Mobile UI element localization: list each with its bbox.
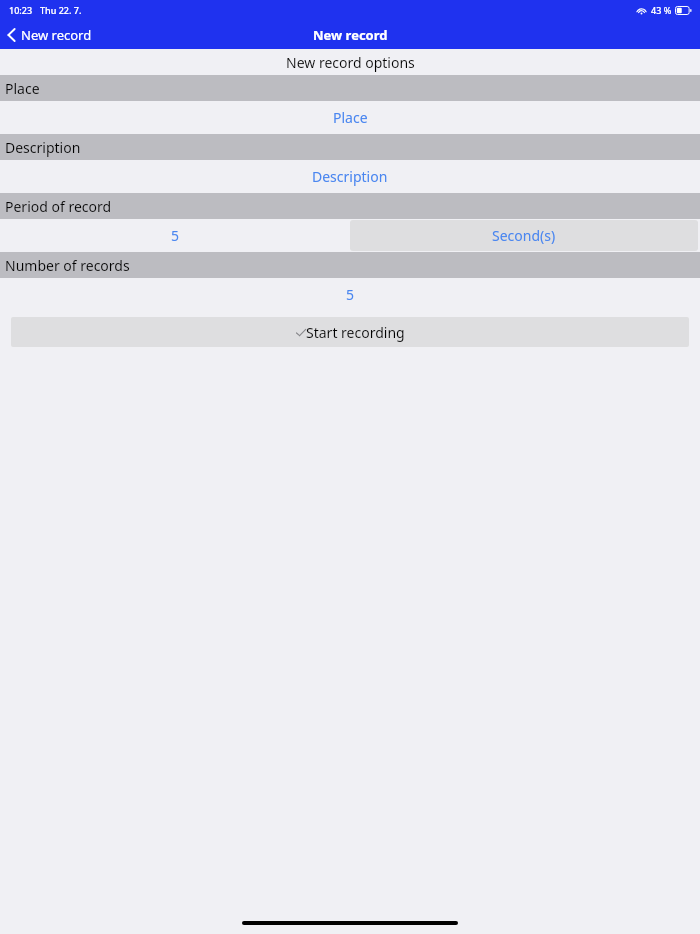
- button[interactable]: Start recording: [11, 317, 689, 347]
- staticText: Second(s): [492, 226, 556, 245]
- staticText: Place: [333, 108, 368, 127]
- staticText: New record options: [286, 53, 415, 72]
- staticText: New record: [21, 26, 92, 44]
- staticText: Period of record: [5, 197, 112, 216]
- staticText: 5: [346, 285, 355, 304]
- staticText: Description: [5, 138, 81, 157]
- staticText: Description: [312, 167, 388, 186]
- button[interactable]: 5: [0, 278, 700, 311]
- staticText: Start recording: [306, 323, 405, 342]
- staticText: New record: [313, 26, 388, 44]
- staticText: 5: [171, 226, 180, 245]
- button[interactable]: 5: [0, 219, 350, 252]
- staticText: 43 %: [651, 4, 672, 16]
- button[interactable]: Back to New record: [0, 22, 100, 48]
- button[interactable]: Place: [0, 101, 700, 134]
- button[interactable]: Description: [0, 160, 700, 193]
- staticText: 10:23: [9, 4, 33, 16]
- button[interactable]: Second(s): [350, 220, 698, 251]
- staticText: Thu 22. 7.: [40, 4, 82, 16]
- staticText: Number of records: [5, 256, 130, 275]
- staticText: Place: [5, 79, 40, 98]
